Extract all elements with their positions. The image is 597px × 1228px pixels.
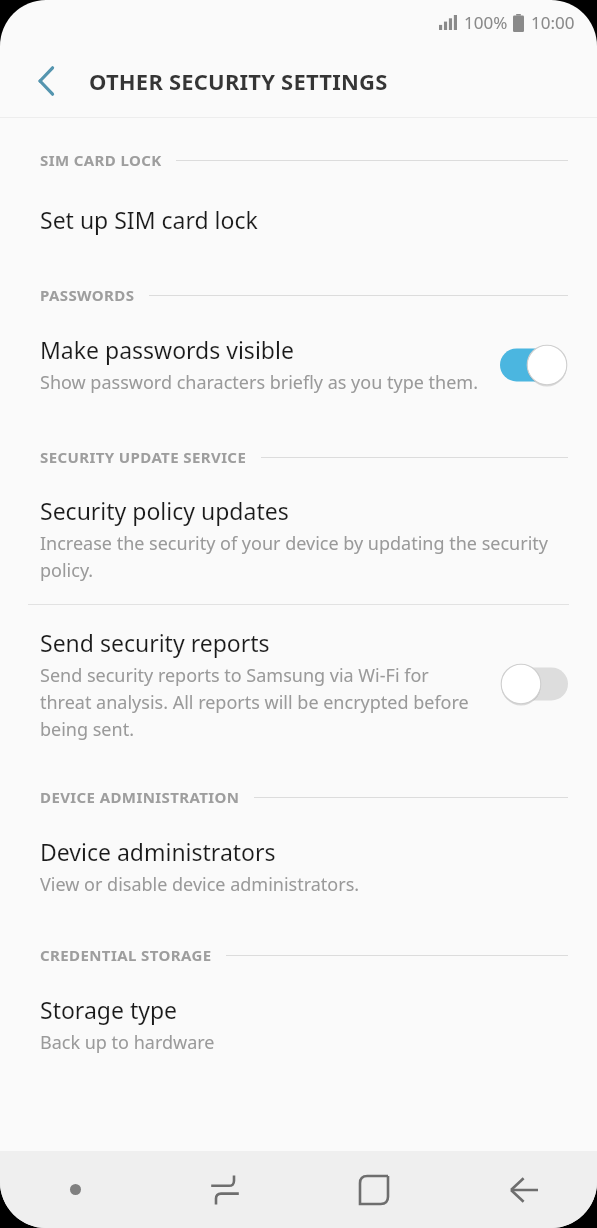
staticText: Security policy updates bbox=[40, 495, 289, 526]
button[interactable]: Back bbox=[20, 55, 72, 107]
staticText: SECURITY UPDATE SERVICE bbox=[40, 447, 247, 467]
staticText: Increase the security of your device by … bbox=[40, 531, 568, 582]
staticText: Make passwords visible bbox=[40, 334, 294, 365]
staticText: CREDENTIAL STORAGE bbox=[40, 945, 212, 965]
staticText: Show password characters briefly as you … bbox=[40, 370, 478, 395]
button[interactable]: Recents bbox=[150, 1151, 299, 1228]
staticText: Send security reports to Samsung via Wi-… bbox=[40, 663, 482, 741]
button[interactable]: Storage type bbox=[0, 965, 597, 1065]
button[interactable]: Back bbox=[448, 1151, 597, 1228]
staticText: View or disable device administrators. bbox=[40, 872, 360, 897]
button[interactable]: Make passwords visible bbox=[0, 305, 597, 415]
staticText: 100% bbox=[464, 11, 508, 34]
staticText: Storage type bbox=[40, 994, 178, 1025]
button[interactable]: Send security reports bbox=[0, 605, 597, 761]
staticText: PASSWORDS bbox=[40, 285, 135, 305]
staticText: DEVICE ADMINISTRATION bbox=[40, 787, 240, 807]
staticText: SIM CARD LOCK bbox=[40, 150, 162, 170]
staticText: 10:00 bbox=[531, 11, 575, 34]
staticText: Send security reports bbox=[40, 627, 270, 658]
button[interactable]: Device administrators bbox=[0, 807, 597, 919]
button[interactable]: Notification indicator bbox=[0, 1151, 150, 1228]
button[interactable]: Home bbox=[299, 1151, 448, 1228]
staticText: Back up to hardware bbox=[40, 1030, 215, 1055]
staticText: Set up SIM card lock bbox=[40, 204, 258, 235]
button[interactable]: Set up SIM card lock bbox=[0, 170, 597, 261]
staticText: Device administrators bbox=[40, 836, 276, 867]
staticText: OTHER SECURITY SETTINGS bbox=[89, 66, 388, 96]
button[interactable]: Security policy updates bbox=[0, 467, 597, 604]
